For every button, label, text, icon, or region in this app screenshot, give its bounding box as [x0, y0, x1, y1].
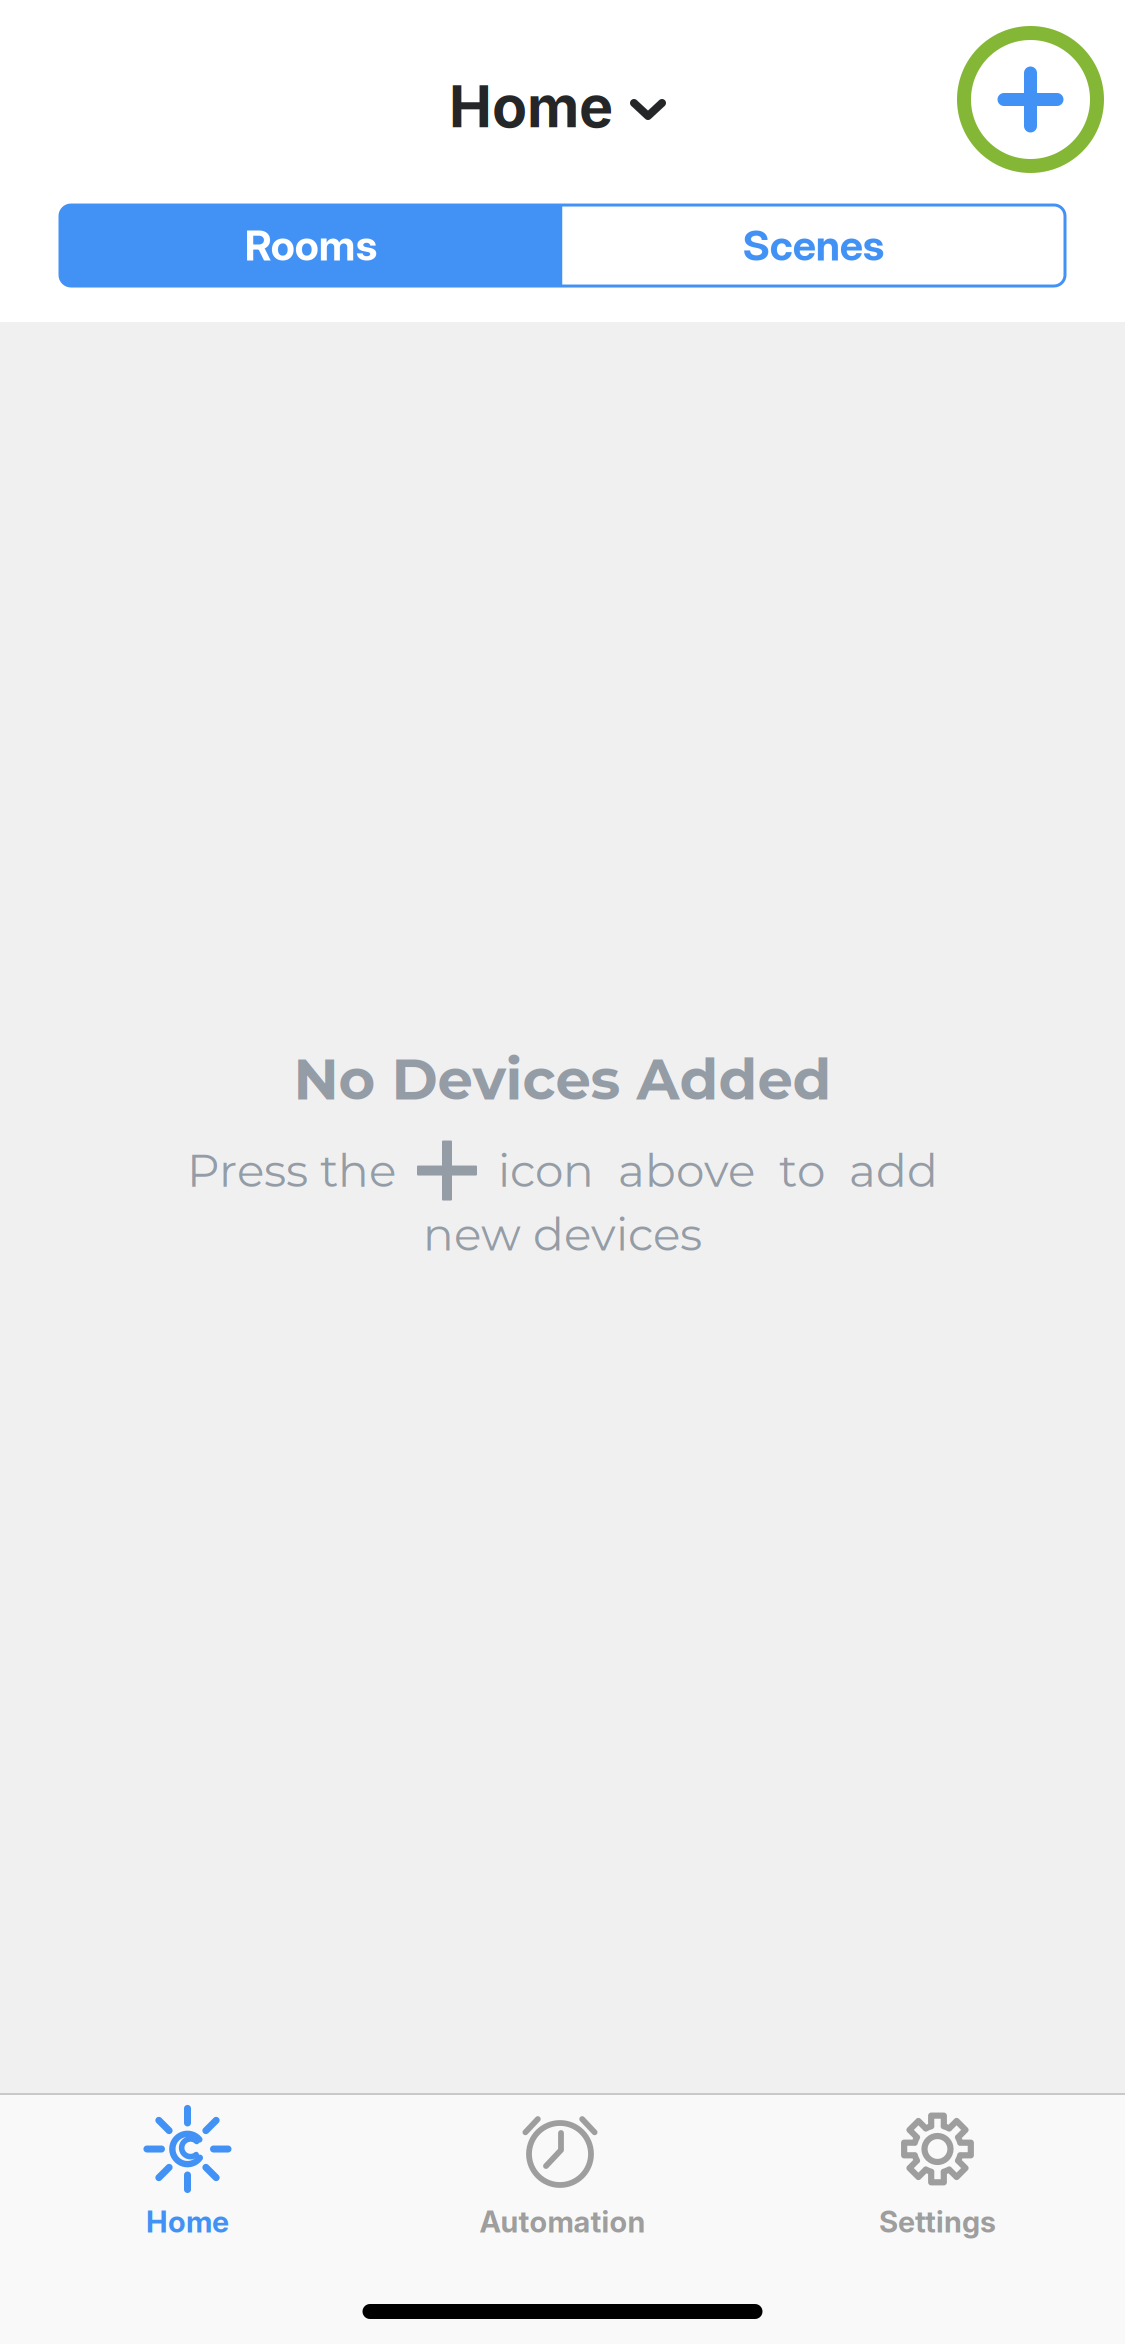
staticText: Press the [187, 1143, 396, 1198]
staticText: icon above to add [498, 1143, 938, 1198]
button[interactable]: Home [0, 2105, 375, 2239]
staticText: Home [449, 72, 613, 141]
button[interactable]: Rooms [60, 205, 562, 286]
button[interactable]: Settings [750, 2105, 1125, 2239]
button[interactable]: Scenes [562, 205, 1065, 286]
staticText: Scenes [743, 220, 885, 270]
button[interactable]: Add device [957, 26, 1104, 173]
staticText: Rooms [245, 220, 378, 270]
staticText: Automation [479, 2204, 645, 2239]
staticText: Settings [879, 2204, 996, 2239]
staticText: Home [146, 2204, 229, 2239]
button[interactable]: Automation [375, 2105, 750, 2239]
staticText: No Devices Added [293, 1045, 831, 1113]
staticText: new devices [423, 1206, 702, 1262]
